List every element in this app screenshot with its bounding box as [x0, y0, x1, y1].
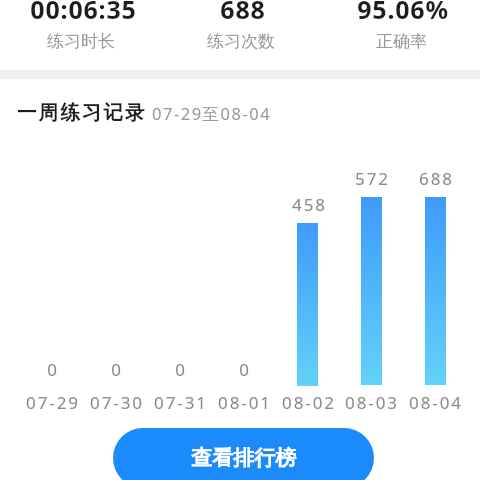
staticText: 688: [220, 0, 266, 26]
button[interactable]: 95.06%: [320, 0, 480, 62]
staticText: 07-31: [154, 391, 208, 414]
staticText: 正确率: [376, 31, 427, 52]
staticText: 08-03: [345, 391, 399, 414]
staticText: 0: [47, 358, 59, 381]
staticText: 95.06%: [357, 0, 449, 26]
staticText: 08-02: [282, 391, 336, 414]
staticText: 688: [419, 167, 454, 190]
staticText: 07-30: [90, 391, 144, 414]
staticText: 08-01: [218, 391, 272, 414]
staticText: 07-29: [26, 391, 80, 414]
staticText: 00:06:35: [30, 0, 137, 26]
staticText: 0: [111, 358, 123, 381]
button[interactable]: 688: [160, 0, 320, 62]
staticText: 07-29至08-04: [152, 102, 272, 125]
staticText: 458: [292, 193, 327, 216]
button[interactable]: 00:06:35: [0, 0, 160, 62]
button[interactable]: 查看排行榜: [113, 428, 374, 480]
staticText: 查看排行榜: [191, 445, 296, 471]
staticText: 练习次数: [207, 31, 275, 52]
staticText: 0: [175, 358, 187, 381]
staticText: 08-04: [409, 391, 463, 414]
staticText: 0: [239, 358, 251, 381]
staticText: 练习时长: [47, 31, 115, 52]
staticText: 572: [355, 167, 390, 190]
staticText: 一周练习记录: [17, 100, 147, 125]
